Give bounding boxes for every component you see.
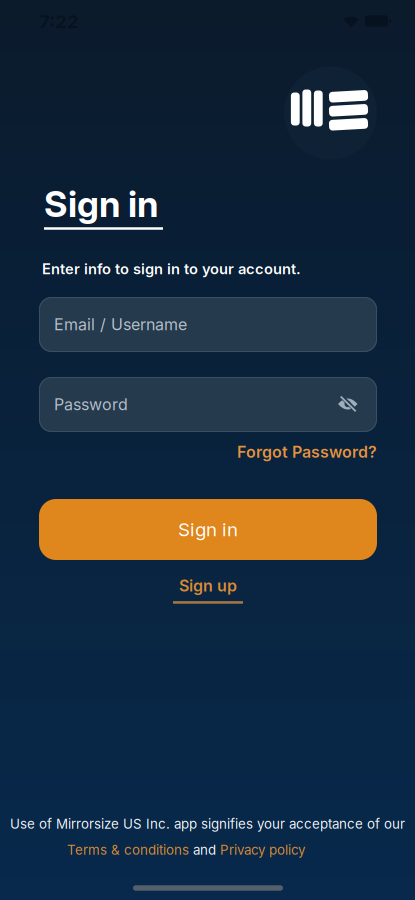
button[interactable]: Show password (336, 395, 360, 413)
button[interactable]: Password (39, 377, 377, 432)
staticText: Password (54, 395, 128, 414)
staticText: and (193, 842, 216, 858)
staticText: 7:22 (39, 10, 79, 32)
staticText: Sign in (178, 518, 238, 540)
button[interactable]: Privacy policy (220, 842, 305, 858)
button[interactable]: Forgot Password? (39, 441, 377, 463)
staticText: Enter info to sign in to your account. (42, 260, 301, 278)
staticText: Sign in (44, 183, 158, 225)
staticText: Use of Mirrorsize US Inc. app signifies … (10, 816, 405, 832)
button[interactable]: Sign up (173, 576, 243, 604)
staticText: Privacy policy (220, 842, 305, 858)
staticText: Sign up (179, 576, 237, 595)
button[interactable]: Sign in (39, 499, 377, 560)
staticText: Email / Username (54, 315, 187, 334)
button[interactable]: Terms & conditions (67, 842, 189, 858)
button[interactable]: Email / Username (39, 297, 377, 352)
staticText: Forgot Password? (237, 443, 377, 461)
staticText: Terms & conditions (67, 842, 189, 858)
